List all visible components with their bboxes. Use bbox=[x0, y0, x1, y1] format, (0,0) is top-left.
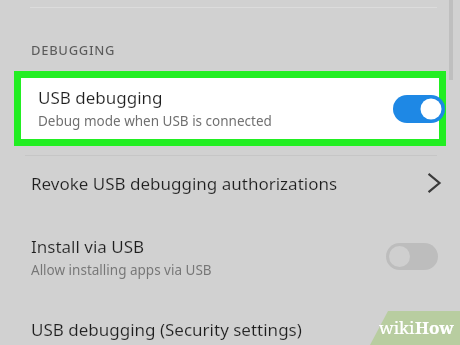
button[interactable]: USB debugging toggle, on bbox=[393, 95, 445, 123]
staticText: USB debugging bbox=[38, 86, 163, 109]
button[interactable]: Revoke USB debugging authorizations bbox=[0, 158, 460, 208]
button[interactable]: Install via USB toggle, off bbox=[386, 243, 438, 270]
staticText: Install via USB bbox=[31, 235, 145, 258]
button[interactable]: Install via USB bbox=[0, 228, 460, 286]
staticText: Debug mode when USB is connected bbox=[38, 112, 272, 130]
staticText: USB debugging (Security settings) bbox=[31, 318, 302, 341]
staticText: Allow installing apps via USB bbox=[31, 261, 212, 279]
staticText: wiki bbox=[379, 316, 415, 339]
staticText: How bbox=[415, 316, 454, 339]
staticText: Revoke USB debugging authorizations bbox=[31, 172, 338, 195]
button[interactable]: USB debugging bbox=[14, 71, 446, 146]
staticText: DEBUGGING bbox=[31, 41, 116, 59]
button[interactable]: USB debugging (Security settings) bbox=[0, 310, 460, 345]
